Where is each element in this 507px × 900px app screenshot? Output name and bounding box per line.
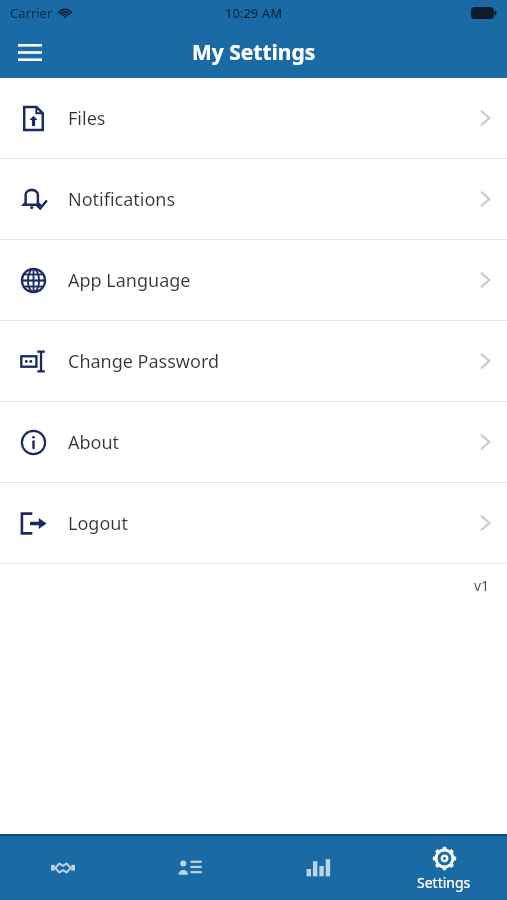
button[interactable]: Reports <box>253 836 380 900</box>
button[interactable]: About <box>0 402 507 482</box>
button[interactable]: App Language <box>0 240 507 320</box>
button[interactable]: Menu <box>8 30 52 74</box>
staticText: App Language <box>68 268 480 293</box>
staticText: 10:29 AM <box>225 4 283 22</box>
button[interactable]: Logout <box>0 483 507 563</box>
staticText: Carrier <box>10 4 53 22</box>
button[interactable]: Partners <box>0 836 126 900</box>
staticText: My Settings <box>192 38 316 67</box>
staticText: Logout <box>68 511 480 536</box>
staticText: Settings <box>417 873 471 892</box>
button[interactable]: Contacts <box>126 836 253 900</box>
button[interactable]: Change Password <box>0 321 507 401</box>
staticText: Files <box>68 106 480 131</box>
staticText: About <box>68 430 480 455</box>
staticText: Notifications <box>68 187 480 212</box>
button[interactable]: Notifications <box>0 159 507 239</box>
button[interactable]: Settings <box>380 836 507 900</box>
button[interactable]: Files <box>0 78 507 158</box>
staticText: v1 <box>474 576 490 595</box>
staticText: Change Password <box>68 349 480 374</box>
